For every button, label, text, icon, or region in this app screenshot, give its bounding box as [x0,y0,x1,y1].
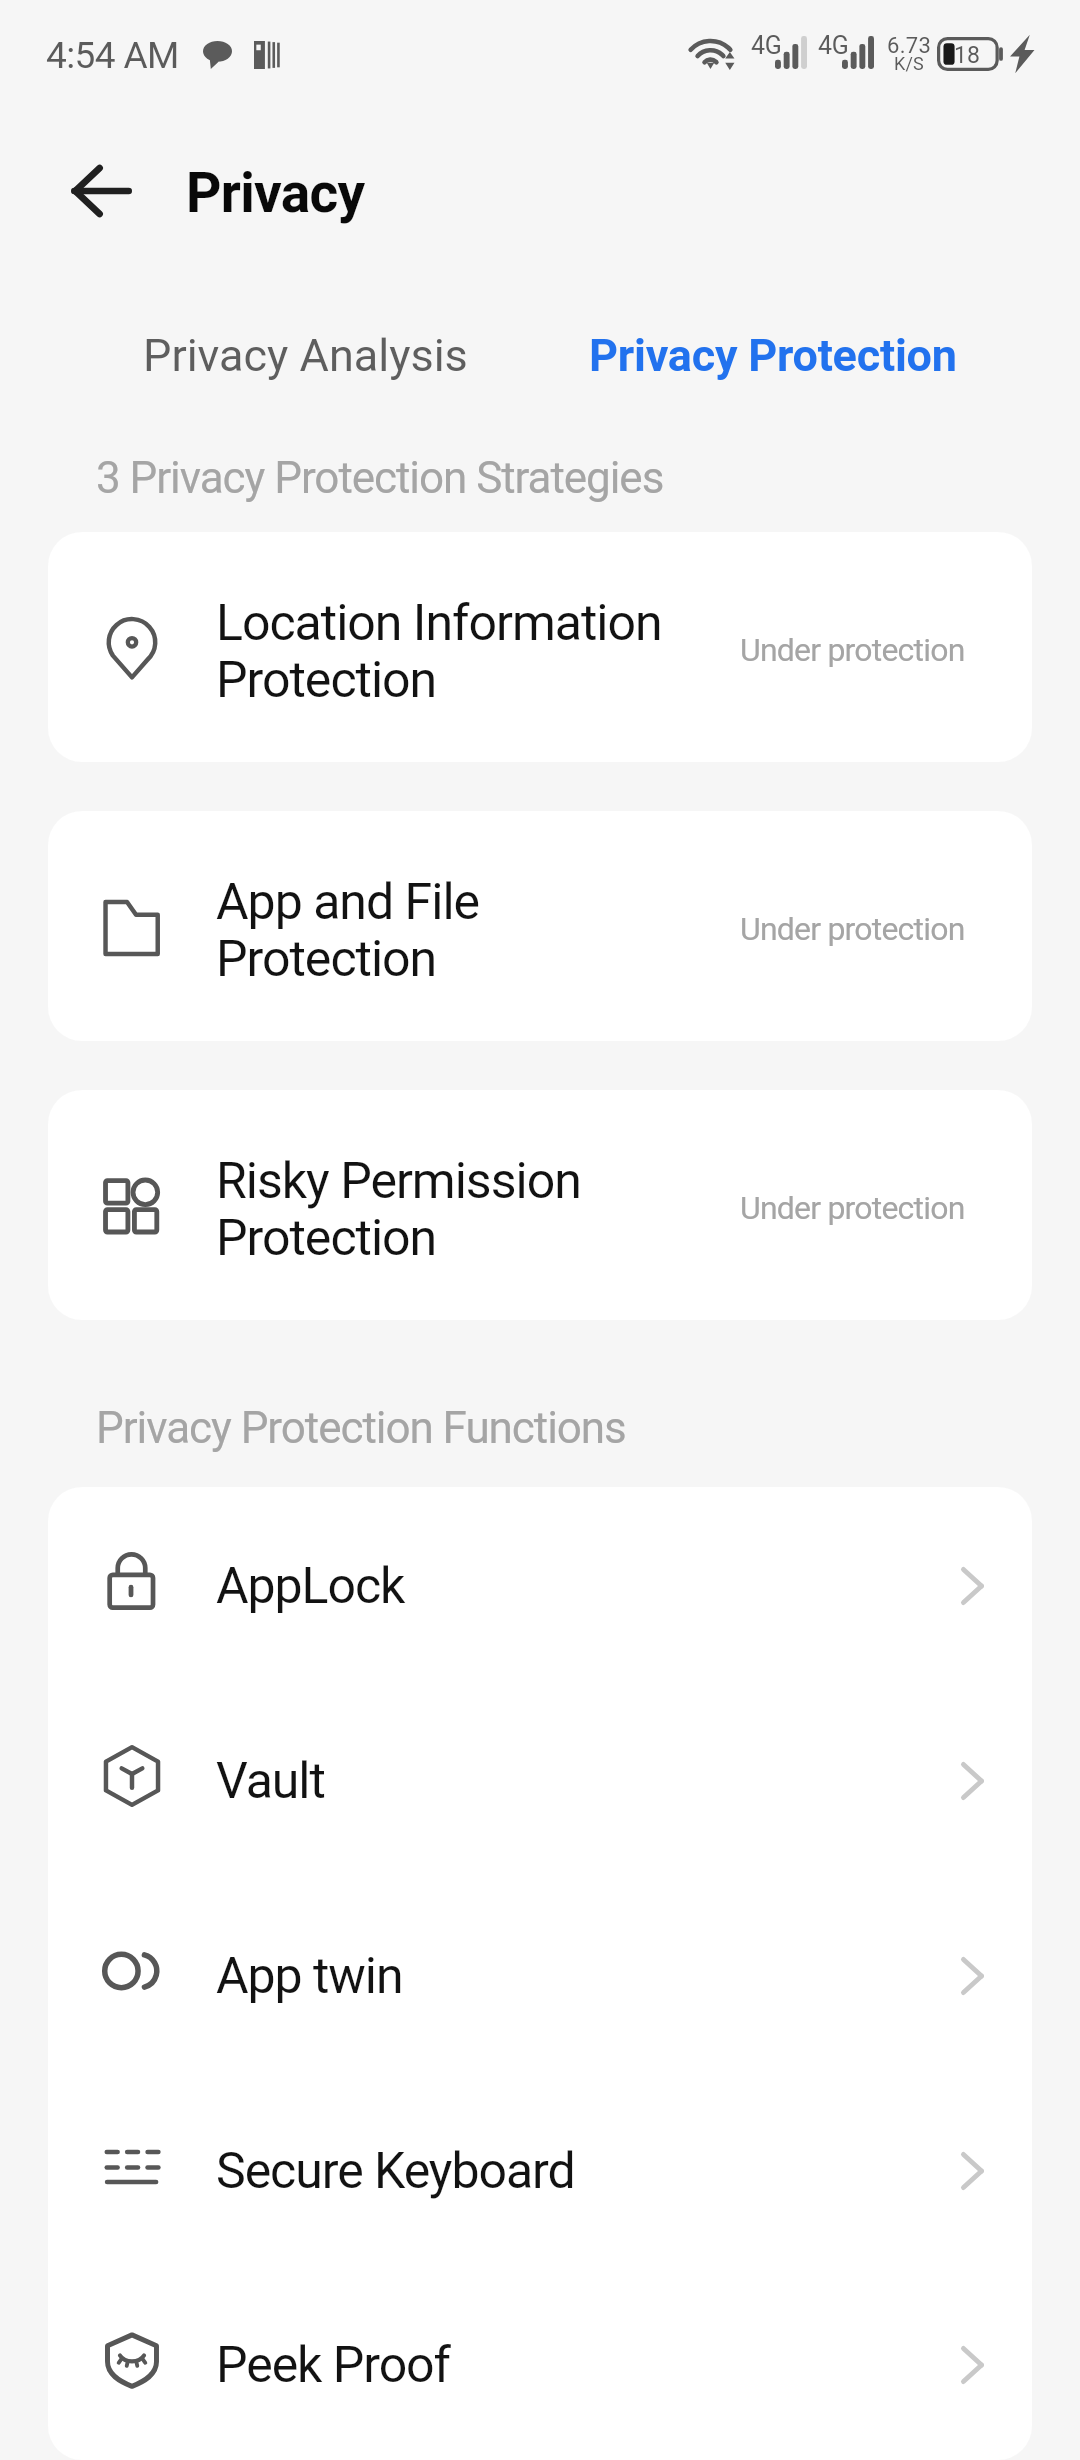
button[interactable]: Risky Permission Protection [48,1090,1032,1320]
staticText: Under protection [740,1189,965,1227]
staticText: App and File Protection [216,873,736,988]
staticText: Vault [216,1752,325,1811]
button[interactable]: Vault [48,1678,1032,1873]
button[interactable]: App and File Protection [48,811,1032,1041]
button[interactable]: Privacy Analysis [72,265,539,400]
staticText: AppLock [216,1557,405,1616]
button[interactable]: App twin [48,1873,1032,2068]
staticText: 6.73 [887,33,932,59]
button[interactable]: Peek Proof [48,2263,1032,2456]
staticText: Secure Keyboard [216,2142,575,2201]
staticText: K/S [894,53,925,74]
staticText: 4:54 AM [46,34,179,77]
staticText: Peek Proof [216,2336,450,2395]
button[interactable]: Location Information Protection [48,532,1032,762]
button[interactable]: Back [41,128,161,248]
button[interactable]: AppLock [48,1487,1032,1678]
staticText: 4G [751,31,782,60]
staticText: 4G [818,31,849,60]
staticText: Risky Permission Protection [216,1152,736,1267]
staticText: Privacy Protection Functions [96,1402,626,1454]
button[interactable]: Privacy Protection [539,265,1007,400]
staticText: App twin [216,1947,403,2006]
staticText: Privacy Analysis [143,329,468,382]
staticText: Privacy [186,161,365,225]
button[interactable]: Secure Keyboard [48,2068,1032,2263]
staticText: Under protection [740,910,965,948]
staticText: Privacy Protection [589,329,957,382]
staticText: 3 Privacy Protection Strategies [96,452,664,504]
staticText: Location Information Protection [216,594,736,709]
staticText: 18 [954,42,980,69]
staticText: Under protection [740,631,965,669]
